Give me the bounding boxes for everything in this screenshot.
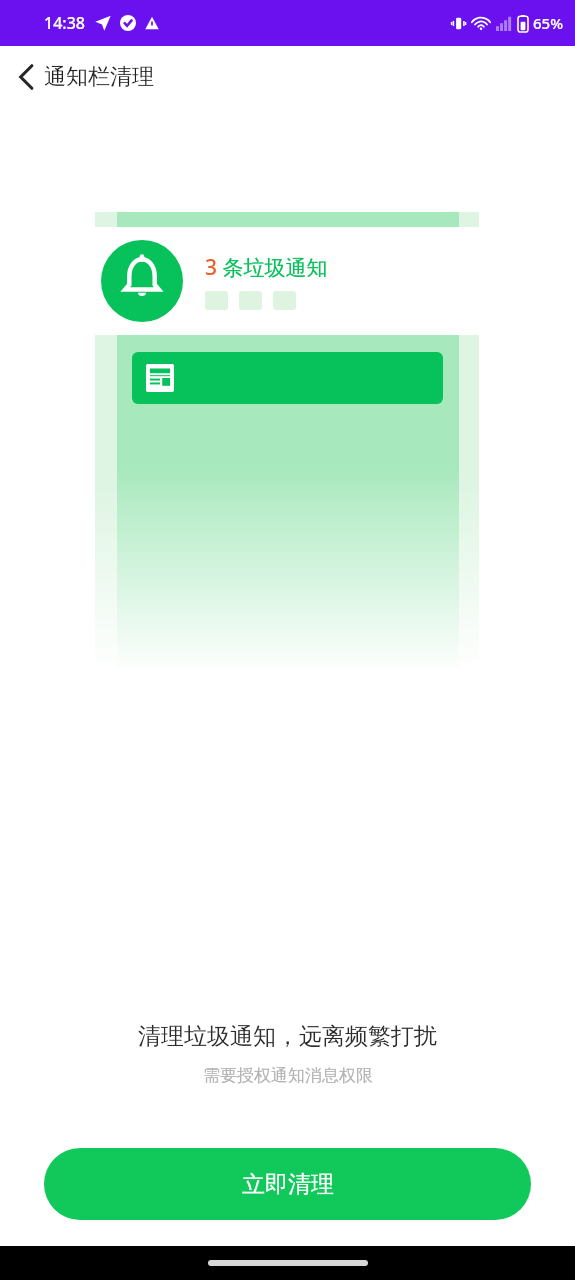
staticText: 14:38 (44, 12, 85, 34)
staticText: 65% (533, 13, 563, 33)
button[interactable]: 立即清理 (44, 1148, 531, 1220)
staticText: 3 条垃圾通知 (205, 253, 328, 282)
staticText: 立即清理 (242, 1170, 334, 1199)
button[interactable]: 3 条垃圾通知 (85, 227, 490, 335)
staticText: 通知栏清理 (44, 63, 154, 91)
button[interactable]: Back (0, 51, 52, 103)
staticText: 需要授权通知消息权限 (203, 1065, 373, 1086)
staticText: 清理垃圾通知，远离频繁打扰 (138, 1022, 437, 1051)
